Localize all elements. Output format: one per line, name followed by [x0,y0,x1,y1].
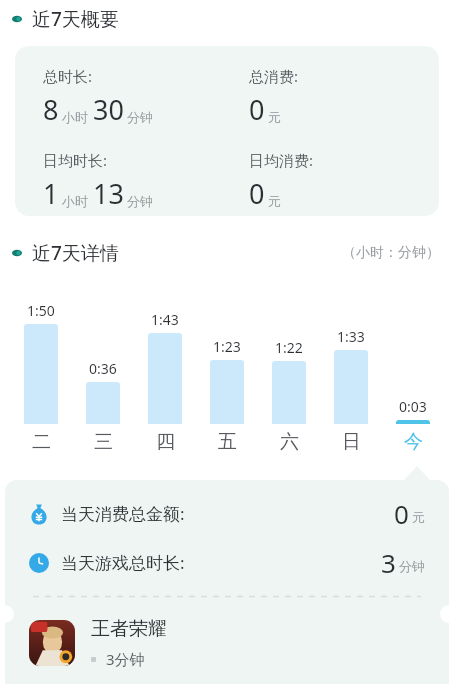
staticText: 日 [342,430,361,454]
staticText: 1:33 [337,327,365,346]
staticText: 元 [412,509,425,525]
staticText: 0:36 [89,359,117,378]
button[interactable]: 1:23 [196,276,258,424]
staticText: 四 [156,430,175,454]
button[interactable]: 王者荣耀 [29,617,425,669]
staticText: 30 [93,91,124,128]
button[interactable]: 0:03 [382,276,444,424]
button[interactable]: 1:33 [320,276,382,424]
button[interactable]: 五 [196,430,258,454]
button[interactable]: 四 [134,430,196,454]
button[interactable]: 总时长: [15,46,439,216]
button[interactable]: 0:36 [72,276,134,424]
staticText: 六 [280,430,299,454]
staticText: 3分钟 [106,649,145,669]
staticText: 0 [249,175,265,212]
staticText: 0 [394,496,409,531]
staticText: 近7天详情 [32,240,119,266]
staticText: 二 [32,430,51,454]
staticText: 三 [94,430,113,454]
button[interactable]: 三 [72,430,134,454]
staticText: 日均消费: [249,150,314,170]
staticText: 13 [93,175,124,212]
button[interactable]: 1:50 [10,276,72,424]
staticText: 1:43 [151,310,179,329]
staticText: 近7天概要 [32,6,119,32]
staticText: 王者荣耀 [91,617,167,641]
staticText: 当天游戏总时长: [61,551,185,574]
staticText: 分钟 [127,193,153,209]
button[interactable]: 日 [320,430,382,454]
staticText: 1:23 [213,337,241,356]
staticText: 总消费: [249,66,299,86]
staticText: 8 [43,91,59,128]
staticText: （小时：分钟） [342,244,440,262]
button[interactable]: 1:22 [258,276,320,424]
staticText: 小时 [62,109,88,125]
button[interactable]: 六 [258,430,320,454]
staticText: 0 [249,91,265,128]
staticText: 分钟 [399,558,425,574]
staticText: 日均时长: [43,150,108,170]
staticText: 1 [43,175,59,212]
staticText: 今 [404,430,423,454]
staticText: 3 [381,545,396,580]
staticText: 总时长: [43,66,93,86]
staticText: 元 [268,193,281,209]
staticText: 元 [268,109,281,125]
staticText: 0:03 [399,397,427,416]
button[interactable]: 二 [10,430,72,454]
staticText: 1:50 [27,301,55,320]
button[interactable]: 当天消费总金额: [5,480,449,684]
button[interactable]: 1:43 [134,276,196,424]
staticText: 五 [218,430,237,454]
button[interactable]: 今 [382,430,444,454]
staticText: 1:22 [275,338,303,357]
staticText: 小时 [62,193,88,209]
staticText: 当天消费总金额: [61,502,185,525]
staticText: 分钟 [127,109,153,125]
